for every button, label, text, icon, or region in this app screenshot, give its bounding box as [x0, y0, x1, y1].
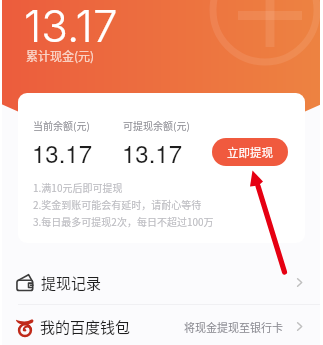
staticText: 累计现金(元): [26, 47, 95, 64]
other: Withdrawal records: [16, 273, 35, 292]
staticText: 将现金提现至银行卡: [184, 319, 283, 335]
staticText: 3.每日最多可提现2次，每日不超过100万: [33, 214, 214, 228]
staticText: 13.17: [24, 0, 118, 52]
staticText: 当前余额(元): [33, 118, 90, 132]
staticText: 可提现余额(元): [123, 118, 190, 132]
staticText: 立即提现: [227, 144, 273, 161]
button[interactable]: Withdrawal records: [0, 261, 323, 304]
staticText: 13.17: [32, 135, 93, 169]
staticText: 1.满10元后即可提现: [33, 180, 123, 194]
button[interactable]: 立即提现: [212, 138, 288, 166]
staticText: 2.奖金到账可能会有延时，请耐心等待: [33, 197, 202, 211]
staticText: 我的百度钱包: [40, 316, 131, 338]
other: My Baidu Wallet: [15, 317, 35, 337]
button[interactable]: My Baidu Wallet: [0, 305, 323, 345]
staticText: 提现记录: [41, 272, 102, 294]
staticText: 13.17: [122, 135, 183, 169]
